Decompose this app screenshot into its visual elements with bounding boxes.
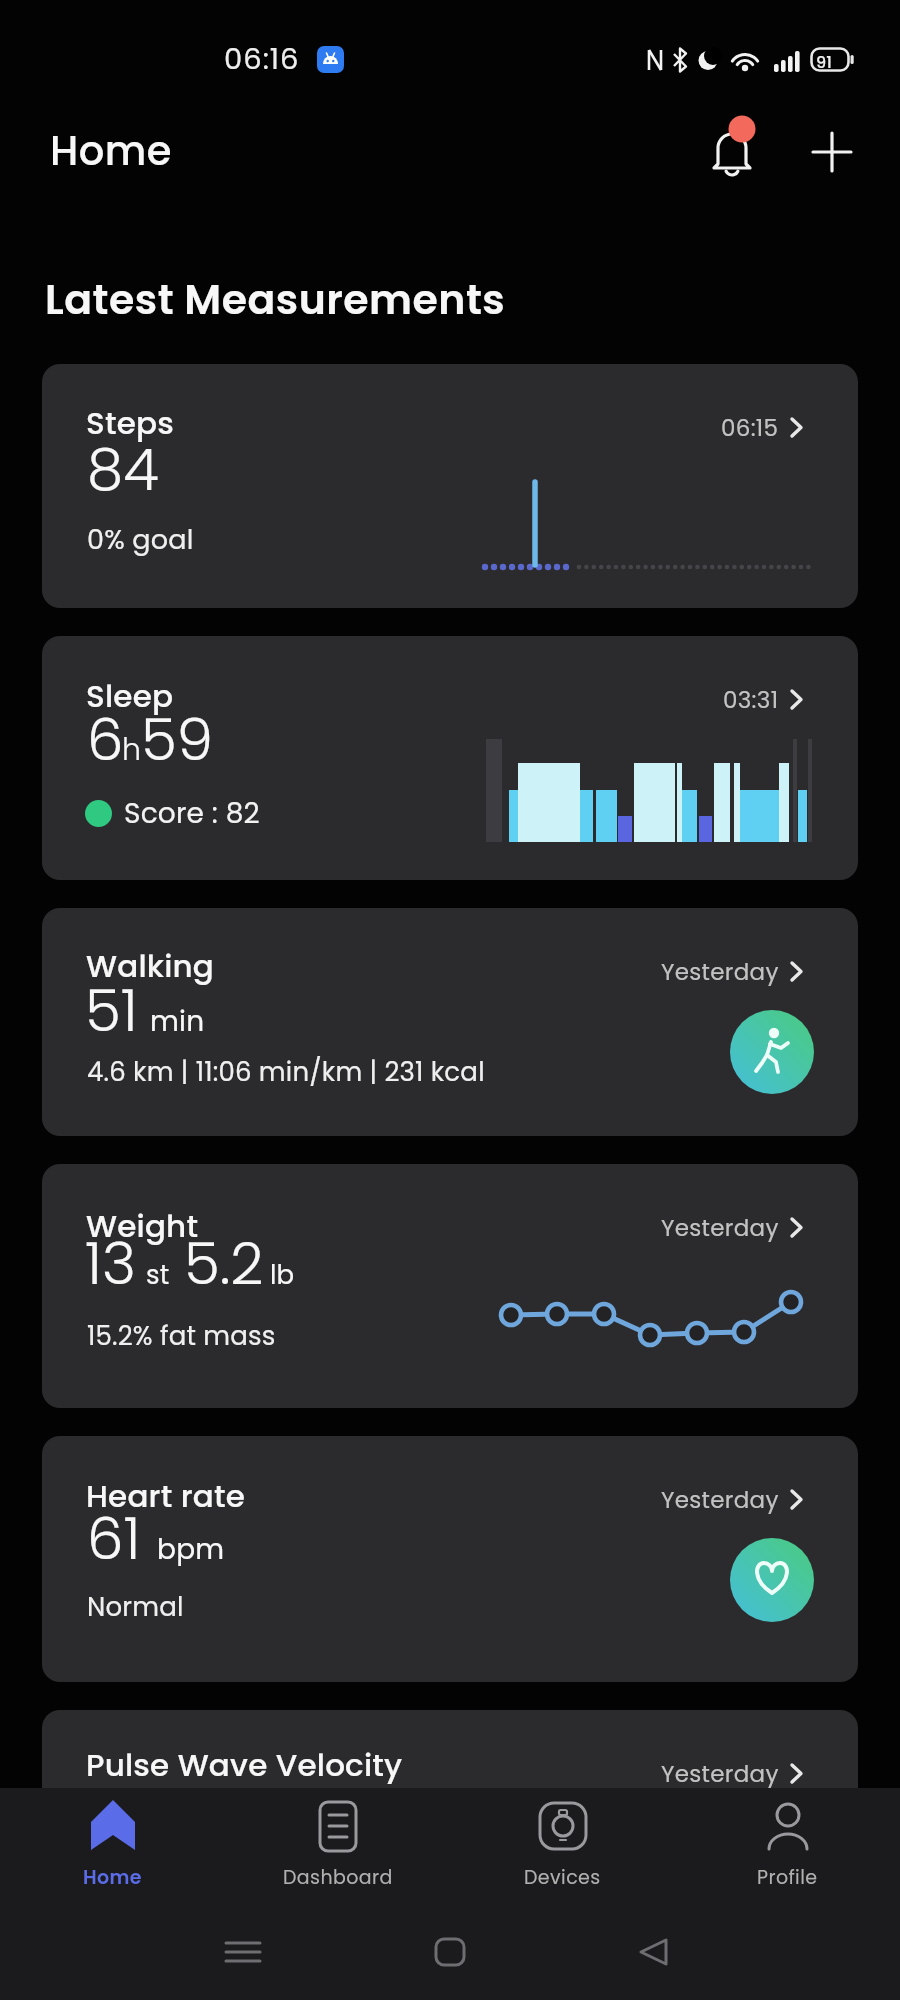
staticText: Profile <box>757 1864 818 1891</box>
staticText: Normal <box>87 1589 184 1625</box>
staticText: Weight <box>86 1204 199 1247</box>
button[interactable]: Yesterday <box>42 908 858 1136</box>
staticText: bpm <box>157 1530 225 1569</box>
staticText: 59 <box>141 699 214 780</box>
staticText: Devices <box>524 1864 601 1891</box>
button[interactable]: 03:31 <box>42 636 858 880</box>
button[interactable]: Dashboard <box>225 1788 450 1908</box>
staticText: 5.2 <box>184 1223 264 1304</box>
button[interactable]: Profile <box>675 1788 900 1908</box>
staticText: Home <box>50 123 172 179</box>
staticText: Yesterday <box>661 1484 779 1516</box>
button[interactable]: Yesterday <box>42 1164 858 1408</box>
staticText: 03:31 <box>723 684 779 716</box>
staticText: Yesterday <box>661 956 779 988</box>
staticText: 06:16 <box>224 39 300 80</box>
staticText: Heart rate <box>86 1474 246 1517</box>
staticText: 13 <box>85 1223 136 1304</box>
staticText: 84 <box>87 429 159 510</box>
staticText: Pulse Wave Velocity <box>86 1743 403 1786</box>
staticText: 15.2% fat mass <box>87 1318 276 1354</box>
button[interactable] <box>808 128 856 176</box>
staticText: 61 <box>87 1498 141 1579</box>
staticText: Sleep <box>86 674 174 717</box>
staticText: Latest Measurements <box>45 271 506 328</box>
button[interactable]: Home <box>0 1788 225 1908</box>
staticText: Steps <box>86 401 174 444</box>
button[interactable]: Devices <box>450 1788 675 1908</box>
staticText: 4.6 km | 11:06 min/km | 231 kcal <box>87 1054 485 1090</box>
staticText: Yesterday <box>661 1212 779 1244</box>
staticText: st <box>146 1257 170 1293</box>
staticText: Home <box>83 1864 142 1891</box>
staticText: 91 <box>816 51 832 73</box>
staticText: lb <box>270 1257 295 1293</box>
staticText: Walking <box>86 944 215 987</box>
staticText: Dashboard <box>283 1864 393 1891</box>
staticText: 06:15 <box>721 412 779 444</box>
button[interactable] <box>697 108 767 192</box>
staticText: Score : 82 <box>124 794 260 833</box>
staticText: 51 <box>85 970 138 1051</box>
staticText: Yesterday <box>661 1758 779 1790</box>
button[interactable]: Yesterday <box>42 1436 858 1682</box>
button[interactable]: 06:15 <box>42 364 858 608</box>
staticText: min <box>150 1002 205 1041</box>
staticText: 0% goal <box>87 521 194 559</box>
staticText: 6 <box>87 699 124 780</box>
staticText: h <box>122 729 141 771</box>
button[interactable]: Yesterday <box>42 1710 858 1950</box>
